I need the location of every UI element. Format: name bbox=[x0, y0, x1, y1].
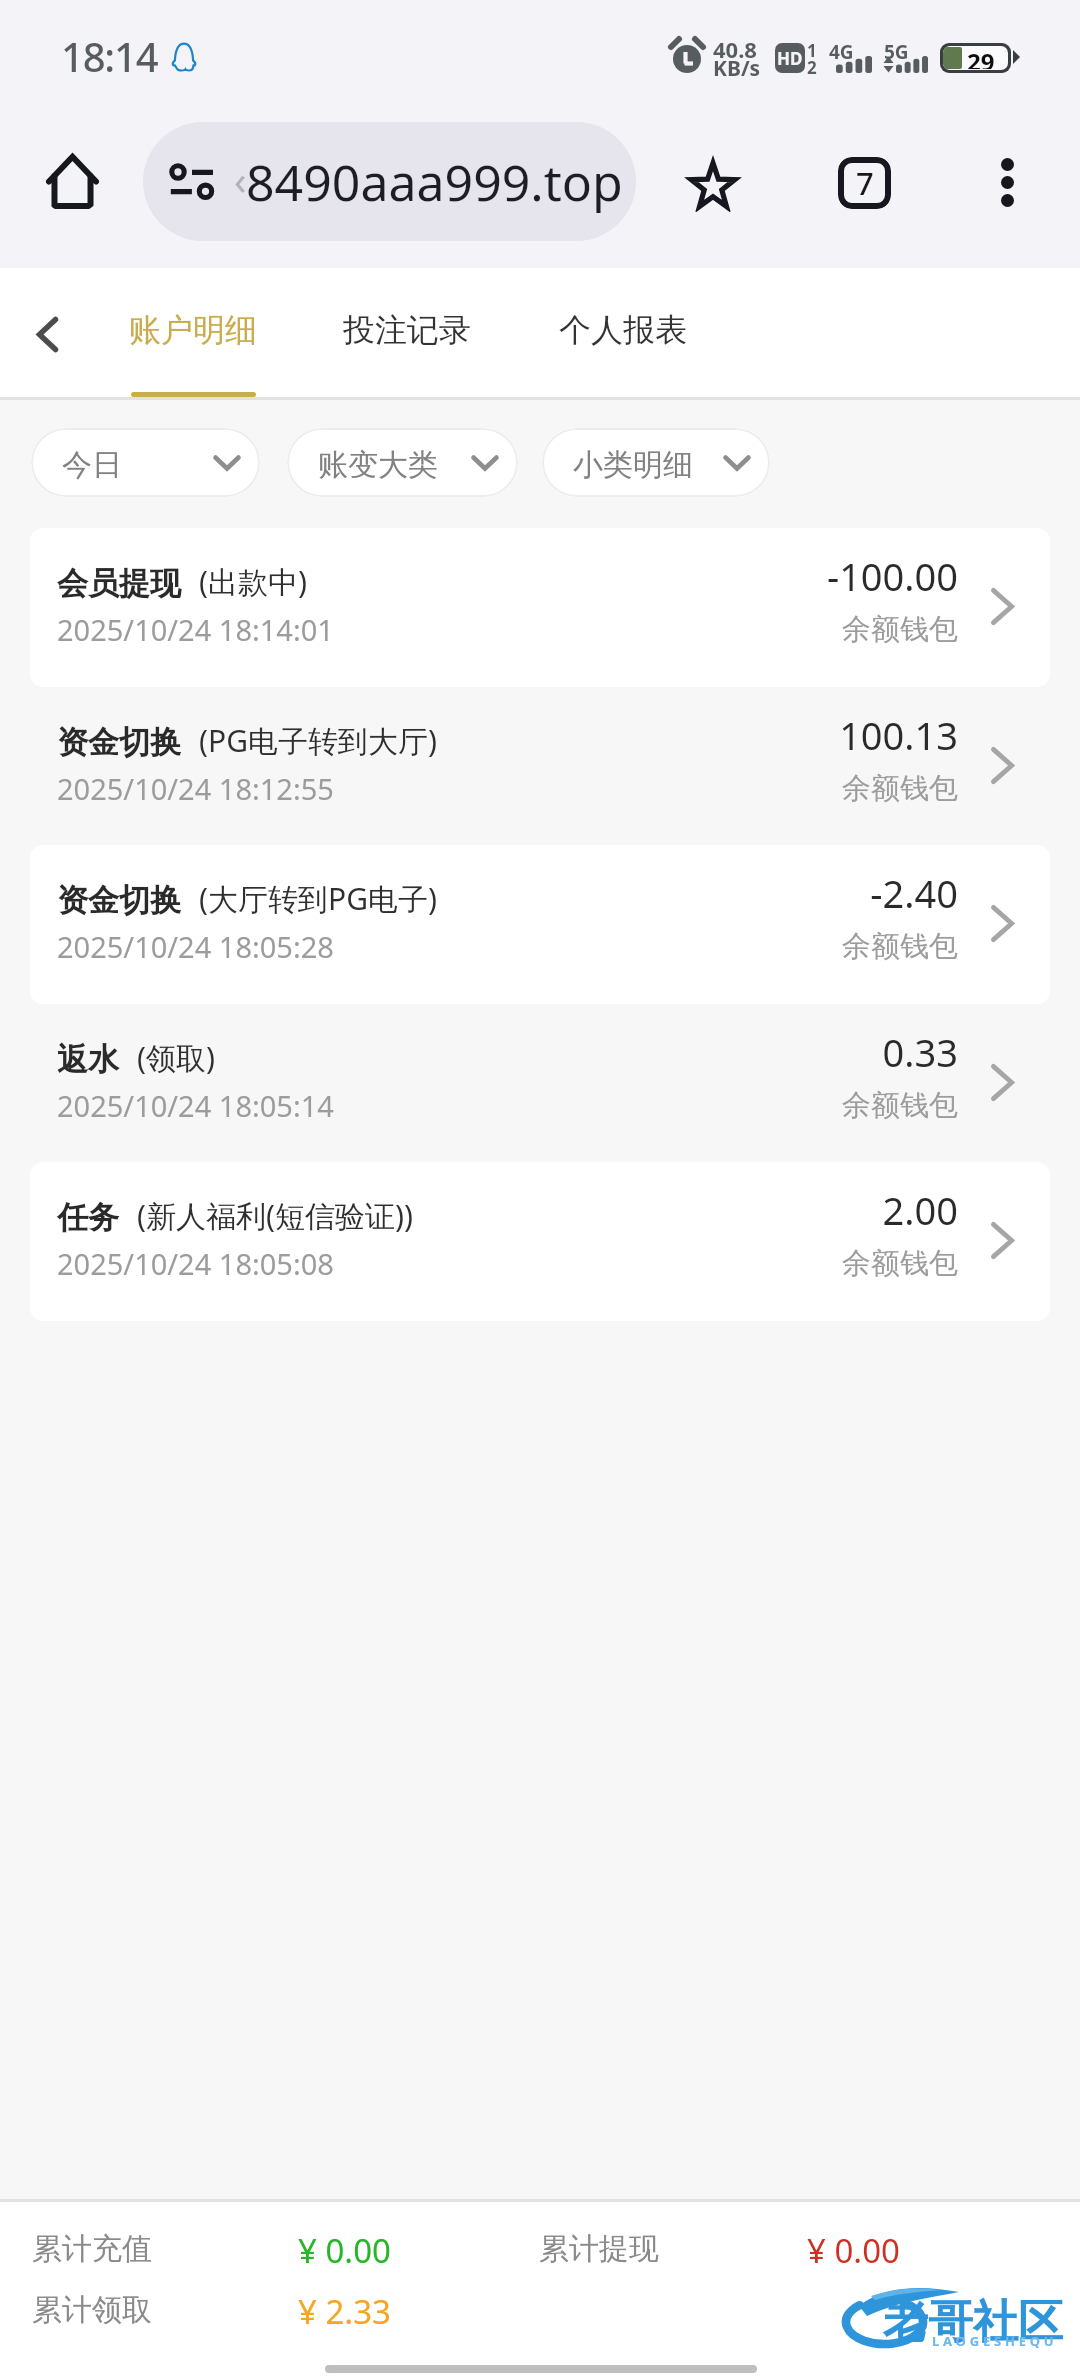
staticText: 老哥社区 bbox=[883, 2294, 1063, 2351]
button[interactable]: 返水 bbox=[30, 1004, 1050, 1163]
staticText: (大厅转到PG电子) bbox=[199, 878, 437, 919]
staticText: 返水 bbox=[57, 1040, 119, 1079]
staticText: (PG电子转到大厅) bbox=[199, 720, 437, 761]
staticText: 投注记录 bbox=[343, 310, 471, 350]
staticText: 29 bbox=[967, 46, 995, 69]
button[interactable]: 会员提现 bbox=[30, 528, 1050, 687]
staticText: 2025/10/24 18:05:14 bbox=[57, 1086, 334, 1125]
button[interactable]: 任务 bbox=[30, 1162, 1050, 1321]
staticText: 40.8 bbox=[713, 34, 757, 64]
staticText: ¥ 2.33 bbox=[298, 2289, 391, 2334]
button[interactable]: 今日 bbox=[31, 428, 260, 497]
staticText: HD bbox=[777, 47, 803, 70]
staticText: 余额钱包 bbox=[558, 1245, 958, 1282]
staticText: 2025/10/24 18:05:28 bbox=[57, 927, 334, 966]
button[interactable]: Tabs bbox=[838, 157, 891, 209]
staticText: 4G bbox=[829, 39, 854, 65]
staticText: 1 bbox=[807, 39, 817, 62]
staticText: 小类明细 bbox=[573, 446, 693, 484]
button[interactable]: 资金切换 bbox=[30, 687, 1050, 846]
staticText: 累计充值 bbox=[32, 2230, 152, 2268]
staticText: 0.33 bbox=[558, 1026, 958, 1078]
button[interactable]: Back bbox=[13, 300, 81, 368]
staticText: 资金切换 bbox=[57, 723, 181, 762]
button[interactable]: 账变大类 bbox=[287, 428, 518, 497]
staticText: KB/s bbox=[713, 54, 761, 83]
staticText: -100.00 bbox=[558, 550, 958, 602]
staticText: 2 bbox=[807, 56, 817, 79]
staticText: 个人报表 bbox=[559, 310, 687, 350]
staticText: 余额钱包 bbox=[558, 1087, 958, 1124]
staticText: 今日 bbox=[62, 446, 122, 484]
button[interactable]: 账户明细 bbox=[110, 268, 276, 397]
staticText: 余额钱包 bbox=[558, 611, 958, 648]
staticText: 会员提现 bbox=[57, 564, 181, 603]
staticText: 累计领取 bbox=[32, 2291, 152, 2329]
staticText: LAOGESHEQU bbox=[932, 2332, 1058, 2350]
staticText: 余额钱包 bbox=[558, 770, 958, 807]
staticText: 5G bbox=[884, 39, 909, 65]
staticText: 账户明细 bbox=[129, 310, 257, 350]
staticText: 2025/10/24 18:05:08 bbox=[57, 1244, 334, 1283]
button[interactable]: More options bbox=[974, 149, 1040, 215]
staticText: 2.00 bbox=[558, 1184, 958, 1236]
button[interactable]: 小类明细 bbox=[542, 428, 770, 497]
staticText: (出款中) bbox=[199, 561, 307, 602]
staticText: 7 bbox=[856, 162, 874, 204]
staticText: ¥ 0.00 bbox=[807, 2228, 900, 2273]
staticText: 累计提现 bbox=[539, 2230, 659, 2268]
staticText: 任务 bbox=[57, 1198, 119, 1237]
staticText: 8490aaa999.top bbox=[246, 148, 623, 216]
button[interactable]: 个人报表 bbox=[543, 268, 703, 397]
staticText: 18:14 bbox=[61, 29, 158, 83]
staticText: (新人福利(短信验证)) bbox=[137, 1195, 413, 1236]
button[interactable]: Home bbox=[39, 148, 105, 214]
staticText: 2025/10/24 18:12:55 bbox=[57, 769, 334, 808]
staticText: ‹ bbox=[234, 152, 247, 206]
staticText: 资金切换 bbox=[57, 881, 181, 920]
staticText: ¥ 0.00 bbox=[298, 2228, 391, 2273]
staticText: 账变大类 bbox=[318, 446, 438, 484]
staticText: (领取) bbox=[137, 1037, 215, 1078]
button[interactable]: ‹ bbox=[143, 122, 636, 241]
staticText: 100.13 bbox=[558, 709, 958, 761]
staticText: -2.40 bbox=[558, 867, 958, 919]
button[interactable]: 资金切换 bbox=[30, 845, 1050, 1004]
button[interactable]: 投注记录 bbox=[327, 268, 487, 397]
staticText: 余额钱包 bbox=[558, 928, 958, 965]
staticText: 2025/10/24 18:14:01 bbox=[57, 610, 334, 649]
button[interactable]: Bookmark bbox=[680, 151, 746, 217]
